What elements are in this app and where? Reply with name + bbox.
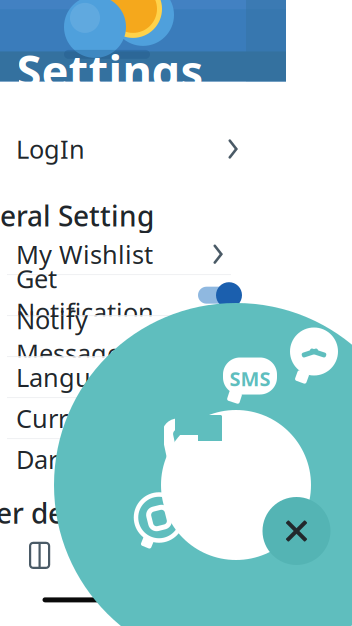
- button[interactable]: Share via SMS: [222, 355, 278, 405]
- staticText: Settings: [16, 40, 203, 101]
- button[interactable]: Share via Messenger: [289, 327, 339, 383]
- staticText: My Wishlist: [16, 237, 153, 271]
- staticText: LogIn: [16, 132, 85, 166]
- staticText: Language: [16, 360, 135, 394]
- button[interactable]: Close share menu: [262, 497, 330, 565]
- button[interactable]: Dark Theme: [0, 439, 286, 480]
- button[interactable]: My Wishlist: [0, 234, 286, 275]
- staticText: Currencies: [16, 401, 143, 435]
- button[interactable]: Notify Messages: [0, 316, 286, 357]
- button[interactable]: Share via phone call: [164, 415, 222, 473]
- button[interactable]: Cart: [145, 531, 216, 587]
- button[interactable]: Catalog: [4, 531, 75, 587]
- button[interactable]: $: [0, 398, 286, 439]
- staticText: General Setting: [0, 197, 154, 234]
- button[interactable]: Share via WhatsApp: [134, 493, 184, 549]
- staticText: Get Notification: [16, 261, 154, 329]
- staticText: SMS: [229, 365, 270, 392]
- button[interactable]: Search: [75, 531, 145, 587]
- staticText: Order details: [0, 494, 121, 531]
- button[interactable]: LogIn: [0, 113, 286, 185]
- staticText: Notify Messages: [16, 302, 133, 370]
- staticText: Dark Theme: [16, 442, 161, 476]
- button[interactable]: Account: [216, 531, 286, 587]
- button[interactable]: Language: [0, 357, 286, 398]
- button[interactable]: Get Notification: [0, 275, 286, 316]
